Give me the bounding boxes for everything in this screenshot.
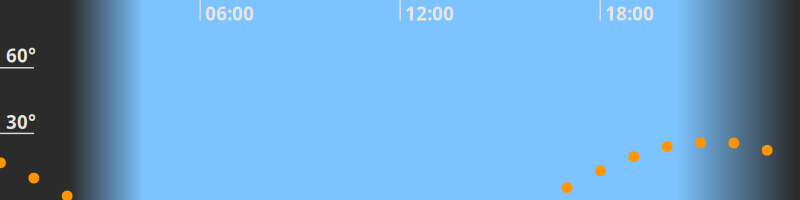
staticText: 60° bbox=[6, 43, 36, 68]
staticText: 30° bbox=[6, 109, 36, 134]
staticText: 12:00 bbox=[405, 1, 454, 26]
staticText: 06:00 bbox=[205, 1, 254, 26]
staticText: 18:00 bbox=[605, 1, 654, 26]
